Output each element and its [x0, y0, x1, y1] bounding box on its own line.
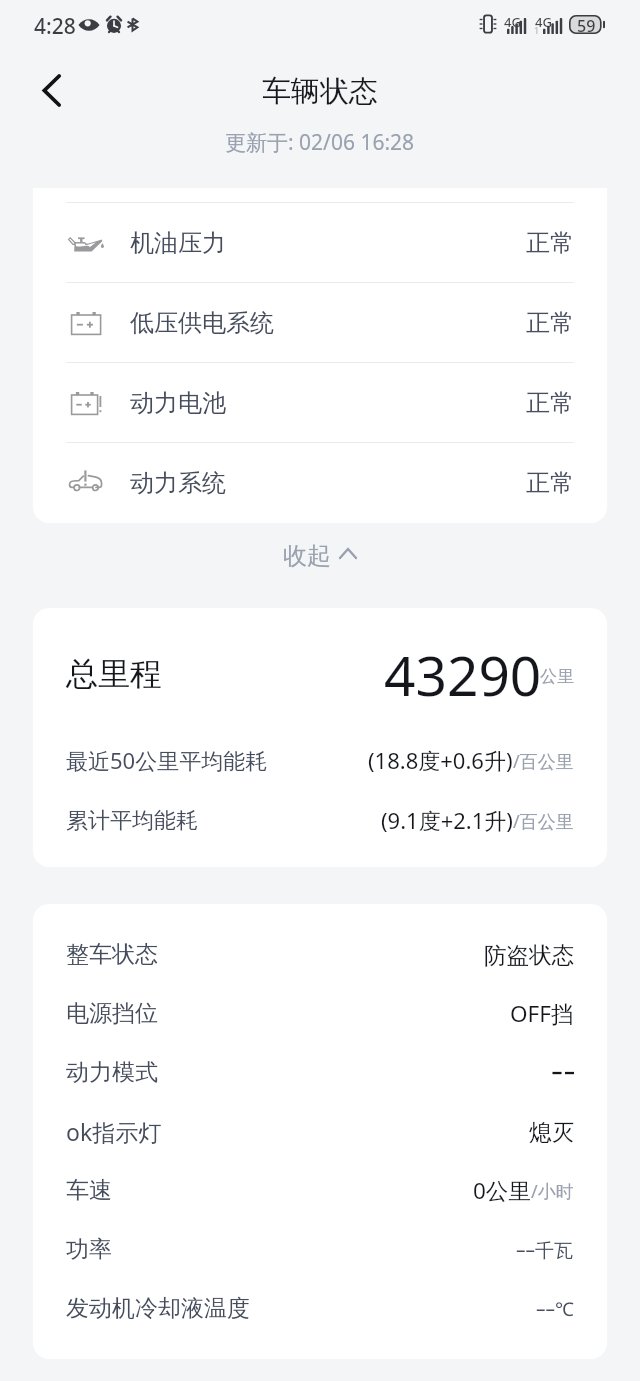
staticText: OFF挡: [510, 998, 574, 1029]
staticText: 电源挡位: [66, 999, 158, 1028]
staticText: 正常: [526, 468, 574, 498]
button[interactable]: 动力模式: [66, 1043, 574, 1102]
button[interactable]: ok指示灯: [66, 1102, 574, 1161]
staticText: 动力系统: [130, 468, 226, 498]
button[interactable]: 动力电池: [33, 363, 607, 442]
staticText: ok指示灯: [66, 1116, 162, 1147]
staticText: /百公里: [513, 749, 574, 774]
button[interactable]: 低压供电系统: [33, 283, 607, 362]
staticText: 车辆状态: [262, 73, 378, 110]
staticText: 正常: [526, 228, 574, 258]
button[interactable]: 功率: [66, 1220, 574, 1279]
staticText: 4G: [535, 13, 552, 31]
staticText: 功率: [66, 1235, 112, 1264]
button[interactable]: 机油压力: [33, 203, 607, 282]
button[interactable]: 电源挡位: [66, 984, 574, 1043]
staticText: 低压供电系统: [130, 308, 274, 338]
staticText: 动力电池: [130, 388, 226, 418]
button[interactable]: Back: [24, 63, 78, 117]
staticText: 正常: [526, 388, 574, 418]
button[interactable]: 整车状态: [66, 925, 574, 984]
staticText: 熄灭: [529, 1118, 574, 1146]
staticText: 防盗状态: [484, 941, 574, 969]
staticText: 59: [577, 15, 596, 34]
staticText: 公里: [540, 666, 574, 687]
staticText: 4G: [504, 13, 521, 31]
button[interactable]: 收起: [283, 541, 356, 571]
staticText: 4:28: [34, 12, 76, 41]
staticText: (18.8度+0.6升): [368, 745, 513, 775]
staticText: 43290: [384, 637, 542, 712]
staticText: 更新于: 02/06 16:28: [225, 128, 415, 157]
staticText: 累计平均能耗: [66, 807, 198, 835]
button[interactable]: 发动机冷却液温度: [66, 1279, 574, 1338]
staticText: 机油压力: [130, 228, 226, 258]
staticText: 发动机冷却液温度: [66, 1294, 250, 1323]
staticText: 1: [534, 24, 540, 36]
staticText: ––千瓦: [516, 1237, 574, 1263]
staticText: 正常: [526, 308, 574, 338]
staticText: (9.1度+2.1升): [381, 805, 513, 835]
staticText: 收起: [283, 541, 331, 571]
button[interactable]: 动力系统: [33, 443, 607, 522]
staticText: ––℃: [536, 1296, 574, 1322]
staticText: /小时: [531, 1179, 574, 1204]
staticText: 动力模式: [66, 1058, 158, 1087]
staticText: 最近50公里平均能耗: [66, 745, 268, 775]
staticText: 车速: [66, 1176, 112, 1205]
staticText: /百公里: [513, 809, 574, 834]
staticText: 整车状态: [66, 940, 158, 969]
button[interactable]: 车速: [66, 1161, 574, 1220]
staticText: 0公里: [473, 1175, 531, 1206]
staticText: 总里程: [66, 654, 162, 694]
